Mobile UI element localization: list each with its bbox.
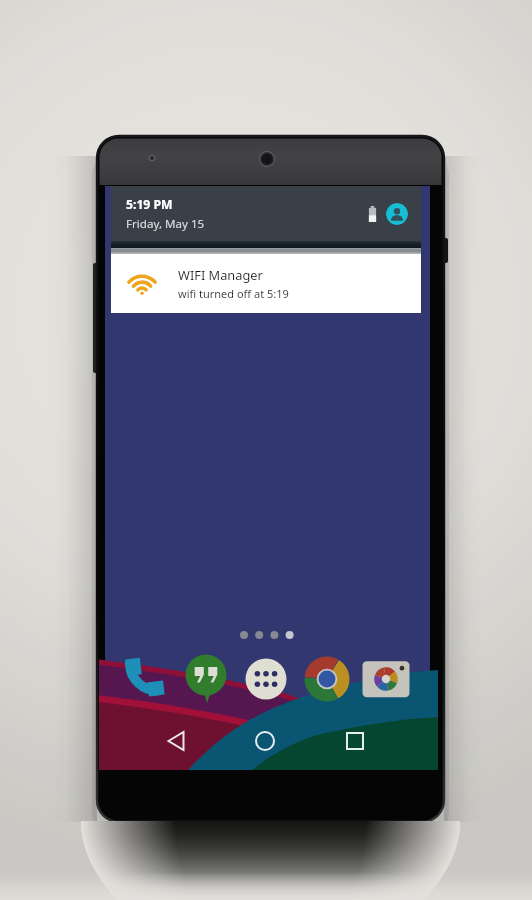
button[interactable]: 5:19 PM: [111, 186, 421, 241]
button[interactable]: Back: [153, 719, 201, 763]
staticText: 5:19 PM: [126, 196, 173, 213]
button[interactable]: Recent apps: [331, 719, 379, 763]
button[interactable]: User profile: [386, 203, 408, 225]
button[interactable]: Home: [241, 719, 289, 763]
staticText: WIFI Manager: [178, 266, 263, 283]
button[interactable]: WIFI Manager: [111, 254, 421, 313]
staticText: wifi turned off at 5:19: [178, 286, 289, 301]
staticText: Friday, May 15: [126, 216, 205, 232]
